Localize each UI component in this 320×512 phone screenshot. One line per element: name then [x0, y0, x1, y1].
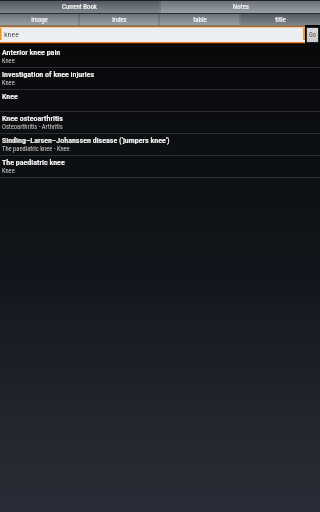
button[interactable]: image: [0, 14, 78, 25]
button[interactable]: Knee: [0, 90, 320, 112]
staticText: Knee: [2, 92, 18, 101]
staticText: table: [193, 16, 207, 24]
staticText: Knee: [2, 79, 15, 87]
staticText: Knee: [2, 57, 15, 65]
staticText: Go: [309, 31, 317, 39]
staticText: Knee osteoarthritis: [2, 114, 63, 123]
staticText: Current Book: [62, 3, 97, 11]
button[interactable]: Investigation of knee injuries: [0, 68, 320, 90]
staticText: title: [275, 16, 286, 24]
button[interactable]: Current Book: [0, 1, 159, 13]
button[interactable]: The paediatric knee: [0, 156, 320, 178]
staticText: Investigation of knee injuries: [2, 70, 95, 79]
staticText: knee: [4, 30, 19, 39]
button[interactable]: index: [80, 14, 158, 25]
staticText: Osteoarthritis - Arthritis: [2, 123, 63, 131]
staticText: Anterior knee pain: [2, 48, 61, 57]
button[interactable]: Anterior knee pain: [0, 46, 320, 68]
staticText: The paediatric knee: [2, 158, 65, 167]
button[interactable]: Knee osteoarthritis: [0, 112, 320, 134]
button[interactable]: Go: [307, 28, 318, 42]
staticText: Notes: [233, 3, 249, 11]
staticText: index: [112, 16, 127, 24]
staticText: Sinding–Larsen–Johanssen disease ('jumpe…: [2, 136, 170, 145]
staticText: image: [31, 16, 48, 24]
button[interactable]: Notes: [161, 1, 320, 13]
button[interactable]: knee: [0, 28, 305, 40]
button[interactable]: table: [160, 14, 239, 25]
staticText: The paediatric knee - Knee: [2, 145, 70, 153]
button[interactable]: Sinding–Larsen–Johanssen disease ('jumpe…: [0, 134, 320, 156]
staticText: Knee: [2, 167, 15, 175]
button[interactable]: title: [241, 14, 320, 25]
